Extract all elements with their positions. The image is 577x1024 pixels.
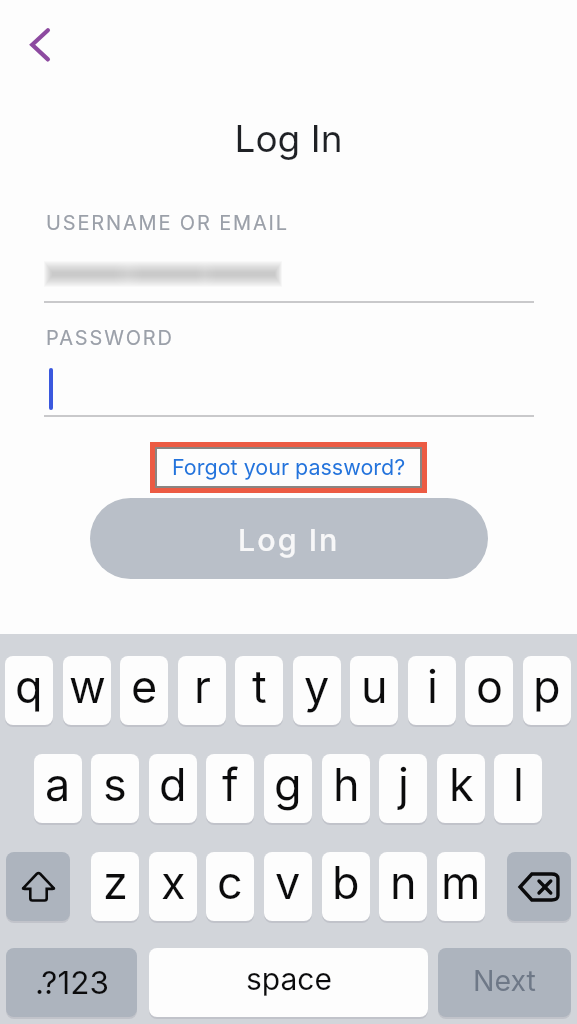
staticText: j <box>398 757 409 811</box>
staticText: z <box>103 855 128 909</box>
staticText: u <box>361 659 388 713</box>
staticText: d <box>159 757 187 811</box>
button[interactable]: Shift <box>6 852 70 921</box>
staticText: l <box>513 757 524 811</box>
button[interactable]: x <box>149 852 197 921</box>
button[interactable]: c <box>206 852 254 921</box>
button[interactable]: Forgot your password? <box>157 449 420 486</box>
staticText: f <box>222 757 239 811</box>
button[interactable]: i <box>408 656 456 725</box>
button[interactable]: b <box>322 852 370 921</box>
staticText: w <box>69 659 106 713</box>
button[interactable]: z <box>91 852 139 921</box>
button[interactable]: g <box>264 754 312 823</box>
button[interactable]: w <box>63 656 111 725</box>
staticText: PASSWORD <box>46 326 174 350</box>
staticText: q <box>15 659 43 713</box>
button[interactable]: .?123 <box>6 948 137 1017</box>
button[interactable]: q <box>5 656 53 725</box>
staticText: space <box>246 961 332 997</box>
staticText: s <box>103 757 127 811</box>
button[interactable]: e <box>120 656 168 725</box>
button[interactable]: space <box>149 948 428 1017</box>
staticText: g <box>274 757 302 811</box>
staticText: r <box>194 659 211 713</box>
staticText: Next <box>473 963 536 997</box>
staticText: USERNAME OR EMAIL <box>46 211 289 235</box>
button[interactable]: a <box>34 754 82 823</box>
button[interactable]: m <box>437 852 485 921</box>
staticText: c <box>217 855 243 909</box>
staticText: t <box>252 659 267 713</box>
staticText: p <box>533 659 561 713</box>
button[interactable]: r <box>178 656 226 725</box>
button[interactable]: Backspace <box>507 852 571 921</box>
button[interactable]: Back <box>6 14 58 66</box>
button[interactable]: v <box>264 852 312 921</box>
staticText: Log In <box>238 521 340 558</box>
staticText: Forgot your password? <box>172 454 406 480</box>
button[interactable]: Log In <box>90 498 488 579</box>
staticText: k <box>449 757 474 811</box>
button[interactable]: l <box>494 754 542 823</box>
staticText: a <box>45 757 71 811</box>
button[interactable]: Next <box>438 948 571 1017</box>
staticText: e <box>131 659 158 713</box>
button[interactable]: p <box>523 656 571 725</box>
button[interactable]: k <box>437 754 485 823</box>
staticText: Log In <box>0 116 577 161</box>
staticText: o <box>476 659 503 713</box>
button[interactable]: j <box>379 754 427 823</box>
staticText: v <box>275 855 301 909</box>
button[interactable]: t <box>235 656 283 725</box>
staticText: .?123 <box>35 963 109 1001</box>
button[interactable]: f <box>206 754 254 823</box>
button[interactable]: y <box>293 656 341 725</box>
button[interactable]: h <box>322 754 370 823</box>
staticText: n <box>390 855 417 909</box>
button[interactable]: s <box>91 754 139 823</box>
staticText: i <box>427 659 438 713</box>
staticText: h <box>333 757 360 811</box>
staticText: b <box>332 855 360 909</box>
staticText: m <box>441 855 481 909</box>
button[interactable]: u <box>350 656 398 725</box>
button[interactable]: n <box>379 852 427 921</box>
staticText: x <box>161 855 186 909</box>
button[interactable]: d <box>149 754 197 823</box>
button[interactable]: o <box>465 656 513 725</box>
staticText: y <box>304 659 330 713</box>
